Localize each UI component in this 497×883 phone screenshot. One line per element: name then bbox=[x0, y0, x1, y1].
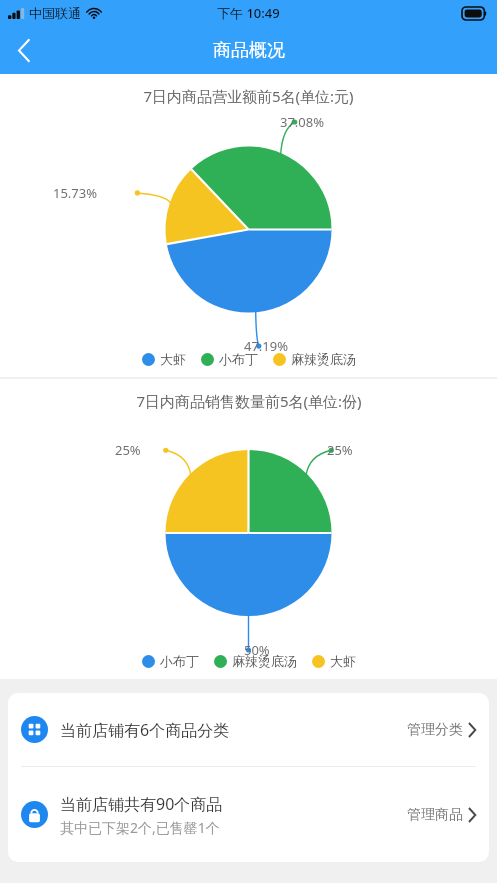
staticText: 47.19% bbox=[244, 337, 289, 355]
staticText: 大虾 bbox=[330, 653, 356, 669]
staticText: 7日内商品营业额前5名(单位:元) bbox=[143, 86, 354, 106]
staticText: 大虾 bbox=[160, 351, 186, 367]
staticText: 中国联通 bbox=[29, 5, 81, 21]
staticText: 麻辣烫底汤 bbox=[291, 351, 356, 367]
staticText: 当前店铺有6个商品分类 bbox=[60, 719, 230, 741]
staticText: 当前店铺共有90个商品 bbox=[60, 793, 223, 815]
staticText: 其中已下架2个,已售罄1个 bbox=[60, 818, 220, 837]
staticText: 小布丁 bbox=[160, 653, 199, 669]
staticText: 25% bbox=[327, 441, 353, 459]
staticText: 15.73% bbox=[53, 184, 98, 202]
staticText: 小布丁 bbox=[219, 351, 258, 367]
button[interactable]: 当前店铺共有90个商品 bbox=[8, 767, 489, 862]
staticText: 商品概况 bbox=[213, 39, 285, 62]
staticText: 管理商品 bbox=[407, 806, 463, 824]
staticText: 25% bbox=[115, 441, 141, 459]
button[interactable]: 当前店铺有6个商品分类 bbox=[8, 693, 489, 766]
staticText: 37.08% bbox=[280, 113, 325, 131]
staticText: 下午 10:49 bbox=[217, 4, 280, 22]
staticText: 麻辣烫底汤 bbox=[232, 653, 297, 669]
button[interactable]: Back bbox=[0, 26, 48, 74]
staticText: 50% bbox=[244, 641, 270, 659]
staticText: 7日内商品销售数量前5名(单位:份) bbox=[136, 391, 362, 411]
staticText: 管理分类 bbox=[407, 721, 463, 739]
